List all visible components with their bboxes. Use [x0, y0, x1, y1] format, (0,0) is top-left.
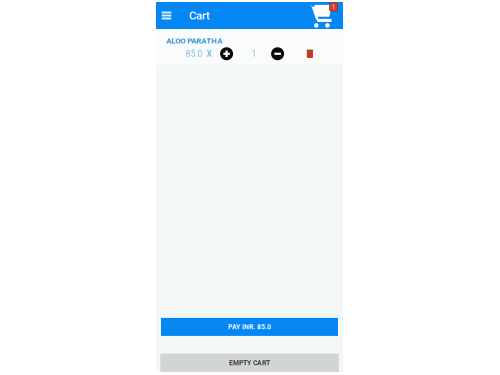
button[interactable]: Open menu: [156, 2, 177, 29]
button[interactable]: Remove item: [307, 50, 313, 58]
staticText: 1: [331, 3, 335, 11]
staticText: 85.0: [185, 49, 202, 59]
button[interactable]: Decrease quantity: [271, 47, 284, 60]
staticText: ALOO PARATHA: [166, 36, 222, 45]
staticText: PAY INR. 85.0: [228, 323, 271, 331]
staticText: X: [206, 49, 211, 59]
staticText: 1: [252, 49, 257, 59]
button[interactable]: EMPTY CART: [160, 354, 339, 372]
staticText: EMPTY CART: [229, 359, 270, 367]
button[interactable]: PAY INR. 85.0: [161, 318, 338, 336]
button[interactable]: View cart: [310, 2, 339, 29]
button[interactable]: Increase quantity: [220, 47, 233, 60]
staticText: Cart: [189, 9, 210, 22]
